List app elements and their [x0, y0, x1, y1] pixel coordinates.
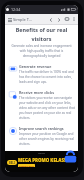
staticText: AD/AD — [38, 152, 45, 155]
staticText: MEGA PROMO KELAS! — [18, 157, 66, 163]
staticText: Generate sales and increase engagement w… — [10, 44, 73, 58]
staticText: Improve search rankings — [19, 126, 64, 131]
staticText: Improve your position on Google and othe… — [19, 132, 76, 146]
button[interactable]: More options — [71, 16, 77, 22]
button[interactable]: Receive more clicks — [7, 88, 76, 121]
staticText: The visitors you receive can navigate yo… — [19, 96, 76, 120]
staticText: Benefits of our real visitors — [15, 26, 68, 42]
staticText: The traffic we deliver is 100% real and … — [19, 70, 76, 84]
staticText: Simple T... — [13, 17, 32, 22]
button[interactable]: Back — [47, 16, 54, 23]
button[interactable]: AD/AD — [5, 151, 78, 172]
staticText: DISKON 50% — [19, 164, 34, 167]
other: Ad icon — [64, 151, 77, 164]
staticText: Receive more clicks — [19, 90, 54, 95]
button[interactable]: Menu — [6, 16, 13, 23]
button[interactable]: Generate revenue — [7, 62, 76, 85]
staticText: 12:34 — [11, 7, 21, 12]
staticText: Generate revenue — [19, 64, 52, 69]
button[interactable]: Improve search rankings — [7, 124, 76, 147]
button[interactable]: Forward — [55, 16, 62, 23]
button[interactable]: Tabs — [63, 15, 71, 23]
staticText: BELI — [9, 161, 15, 165]
